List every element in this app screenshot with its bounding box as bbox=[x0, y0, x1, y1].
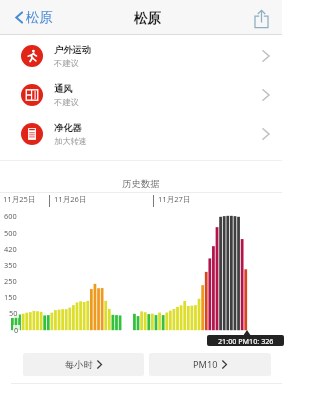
button[interactable]: 户外运动 bbox=[0, 36, 282, 75]
staticText: 50 bbox=[9, 308, 18, 318]
staticText: 150 bbox=[4, 292, 17, 302]
staticText: 松原 bbox=[134, 10, 161, 27]
button[interactable]: Share bbox=[252, 8, 272, 28]
staticText: 11月27日 bbox=[158, 194, 191, 204]
button[interactable]: PM10 bbox=[149, 353, 271, 376]
staticText: PM10 bbox=[193, 358, 218, 371]
button[interactable]: 每小时 bbox=[23, 353, 144, 376]
staticText: 250 bbox=[4, 276, 17, 286]
staticText: 21:00 PM10: 326 bbox=[218, 336, 274, 346]
staticText: 历史数据 bbox=[0, 178, 282, 190]
staticText: 通风 bbox=[54, 83, 73, 95]
staticText: 不建议 bbox=[54, 97, 79, 107]
staticText: 净化器 bbox=[54, 122, 82, 134]
staticText: 不建议 bbox=[54, 58, 79, 68]
staticText: 420 bbox=[4, 244, 17, 254]
staticText: 每小时 bbox=[65, 359, 93, 371]
staticText: 11月26日 bbox=[54, 194, 87, 204]
button[interactable]: 松原 bbox=[0, 4, 61, 31]
staticText: 500 bbox=[4, 228, 17, 238]
staticText: 600 bbox=[4, 211, 17, 221]
staticText: 松原 bbox=[26, 9, 53, 26]
staticText: 加大转速 bbox=[54, 136, 87, 146]
staticText: 户外运动 bbox=[54, 44, 91, 56]
button[interactable]: 净化器 bbox=[0, 114, 282, 153]
staticText: 11月25日 bbox=[3, 194, 36, 204]
staticText: 0 bbox=[14, 325, 19, 335]
button[interactable]: 通风 bbox=[0, 75, 282, 114]
staticText: 350 bbox=[4, 260, 17, 270]
